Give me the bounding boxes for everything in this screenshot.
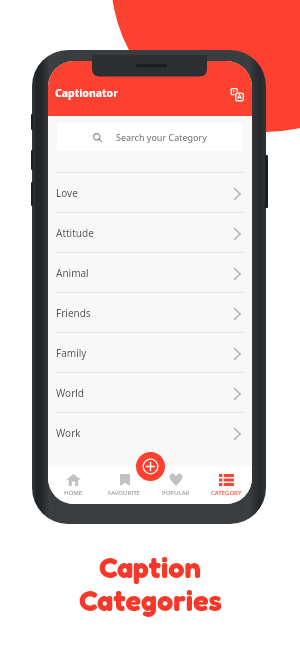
- staticText: FAVOURITE: [108, 489, 141, 497]
- staticText: Family: [56, 346, 87, 360]
- button[interactable]: Love: [48, 172, 252, 212]
- staticText: Animal: [56, 266, 89, 280]
- staticText: HOME: [64, 489, 83, 497]
- staticText: Friends: [56, 306, 91, 320]
- button[interactable]: Attitude: [48, 212, 252, 252]
- button[interactable]: Add: [136, 452, 165, 481]
- staticText: Work: [56, 426, 81, 440]
- button[interactable]: World: [48, 372, 252, 412]
- button[interactable]: FAVOURITE: [99, 466, 150, 504]
- staticText: Search your Category: [116, 131, 207, 143]
- button[interactable]: Search your Category: [57, 123, 243, 151]
- staticText: CATEGORY: [211, 489, 242, 497]
- staticText: Categories: [79, 583, 222, 618]
- button[interactable]: Animal: [48, 252, 252, 292]
- staticText: Captionator: [55, 86, 118, 100]
- button[interactable]: POPULAR: [150, 466, 201, 504]
- staticText: Attitude: [56, 226, 94, 240]
- staticText: World: [56, 386, 85, 400]
- button[interactable]: Translate: [230, 86, 245, 101]
- staticText: POPULAR: [162, 489, 190, 497]
- staticText: Caption: [99, 550, 201, 585]
- button[interactable]: Friends: [48, 292, 252, 332]
- button[interactable]: Family: [48, 332, 252, 372]
- staticText: Love: [56, 186, 78, 200]
- button[interactable]: CATEGORY: [201, 466, 252, 504]
- button[interactable]: Work: [48, 412, 252, 452]
- button[interactable]: HOME: [48, 466, 99, 504]
